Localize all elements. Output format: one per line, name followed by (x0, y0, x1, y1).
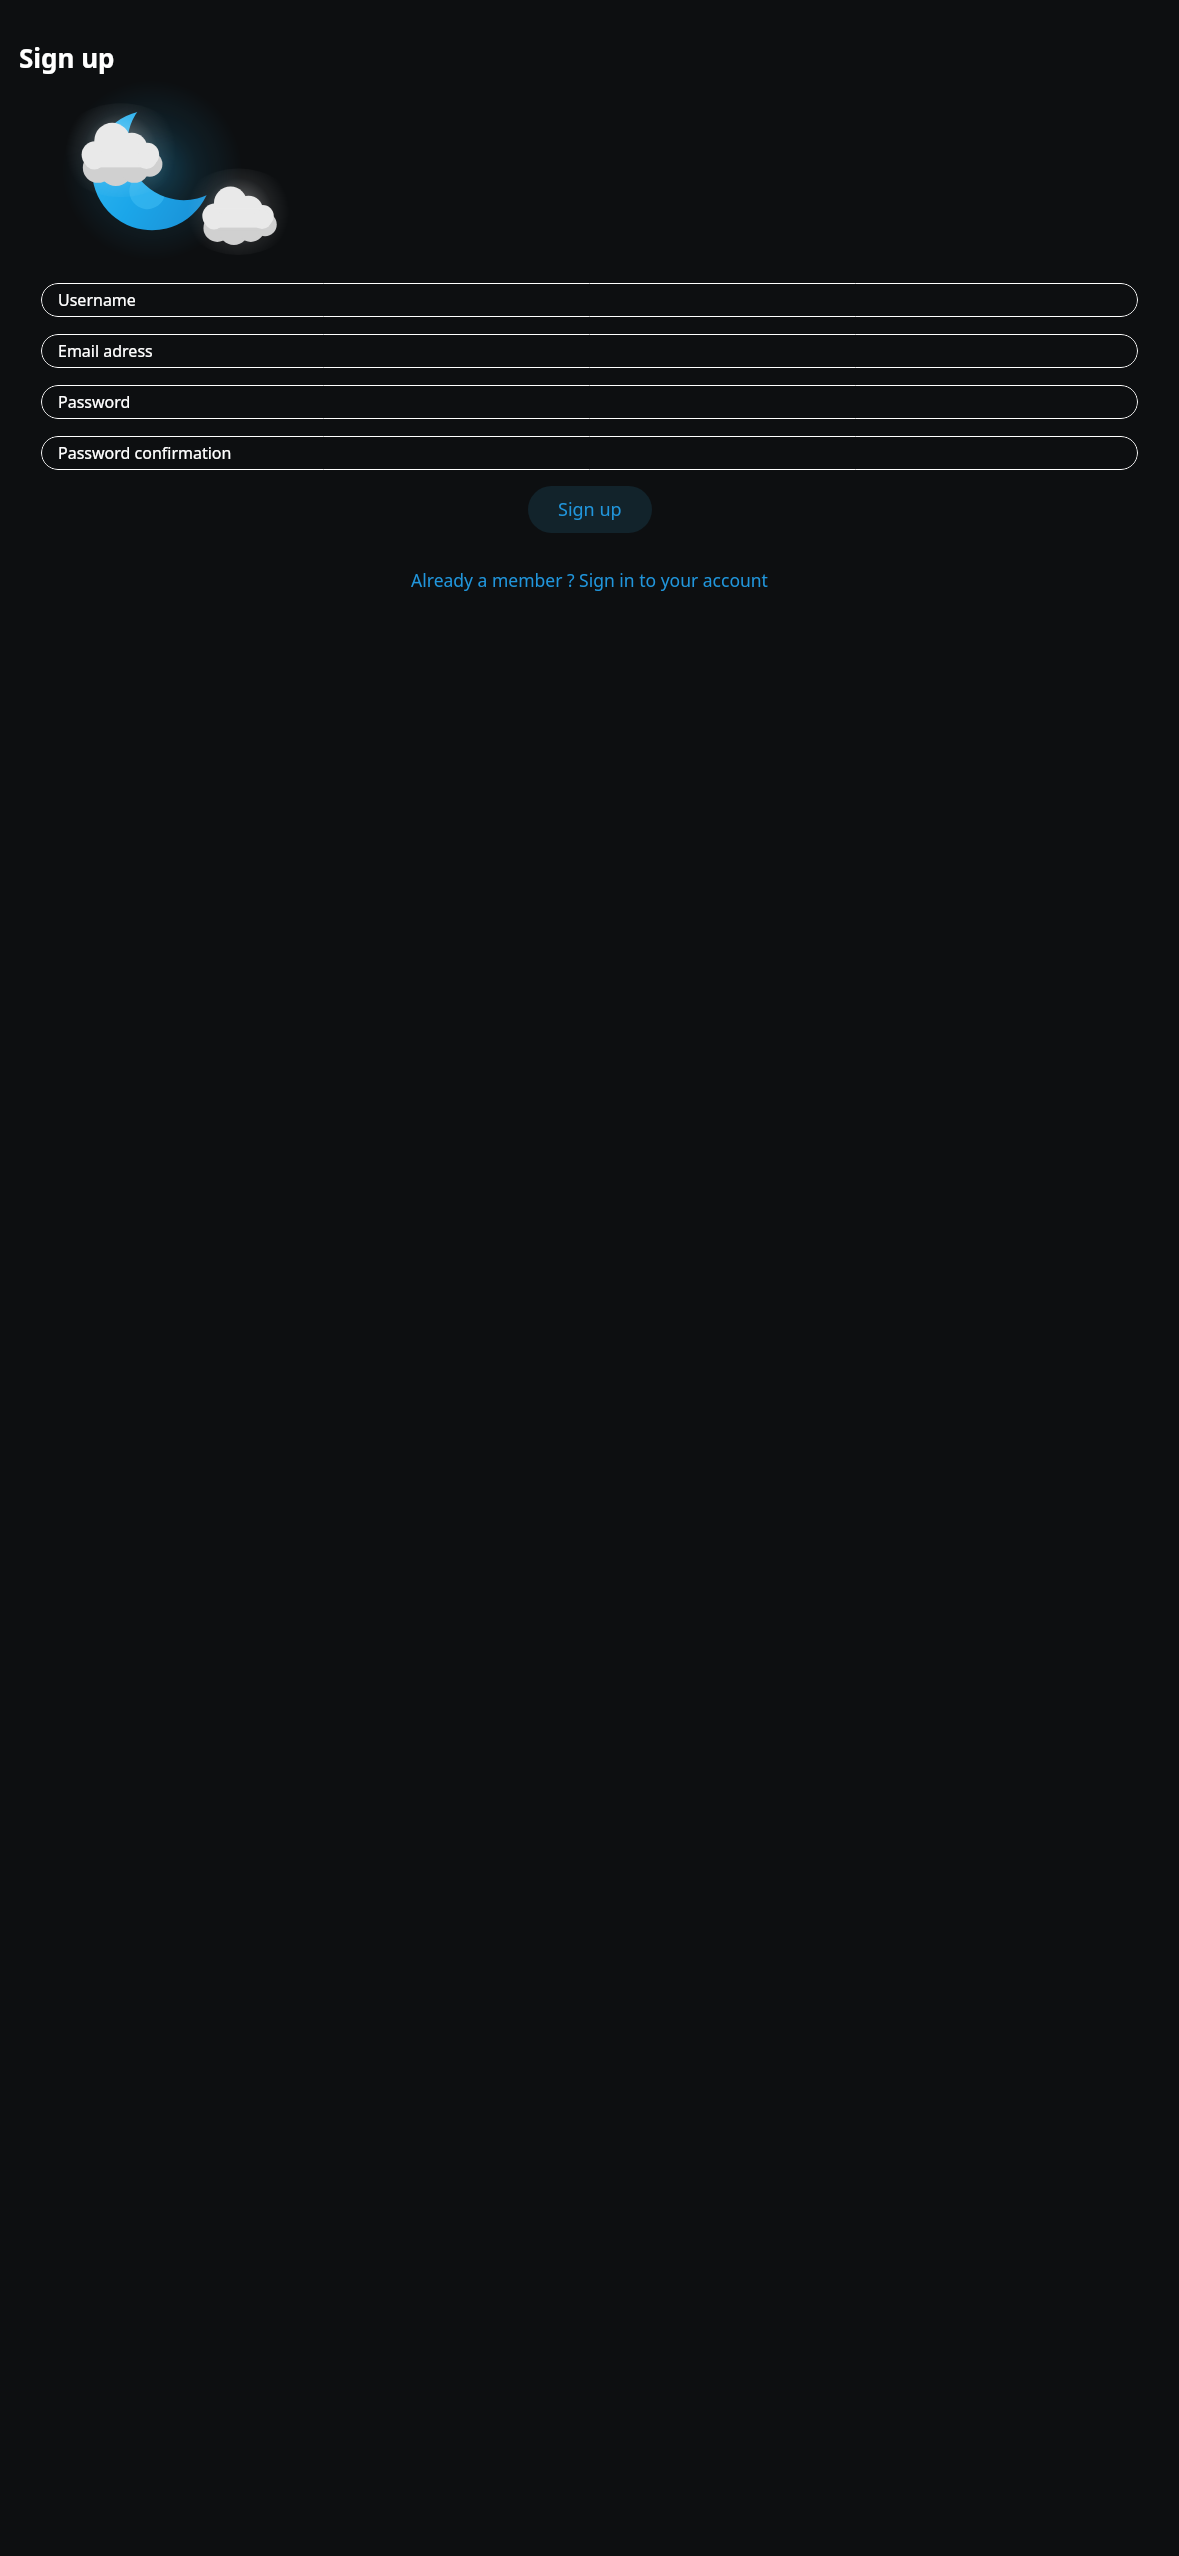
other: Night moon illustration (0, 103, 1179, 235)
button[interactable]: Sign up (528, 486, 652, 533)
staticText: Sign up (19, 40, 115, 75)
button[interactable]: Already a member ? Sign in to your accou… (0, 563, 1179, 597)
button[interactable]: Password confirmation (41, 436, 1138, 470)
staticText: Password confirmation (58, 442, 232, 464)
staticText: Username (58, 289, 136, 311)
button[interactable]: Email adress (41, 334, 1138, 368)
staticText: Password (58, 391, 131, 413)
staticText: Sign up (558, 497, 622, 522)
button[interactable]: Username (41, 283, 1138, 317)
button[interactable]: Password (41, 385, 1138, 419)
staticText: Email adress (58, 340, 153, 362)
staticText: Already a member ? Sign in to your accou… (411, 568, 768, 592)
